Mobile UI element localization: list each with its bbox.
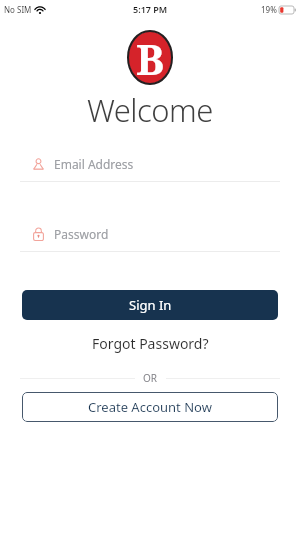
staticText: Create Account Now [88, 398, 212, 416]
staticText: No SIM [4, 4, 32, 15]
staticText: 5:17 PM [133, 3, 168, 15]
button[interactable]: Create Account Now [22, 392, 278, 422]
button[interactable]: Forgot Password? [92, 334, 209, 353]
staticText: Password [54, 226, 109, 242]
button[interactable]: Sign In [22, 290, 278, 320]
staticText: Welcome [87, 89, 213, 129]
button[interactable]: Password [33, 226, 300, 242]
staticText: Sign In [129, 296, 172, 314]
staticText: 19% [261, 4, 277, 15]
staticText: Email Address [54, 156, 134, 172]
staticText: Forgot Password? [92, 334, 209, 353]
button[interactable]: Email Address [33, 156, 300, 172]
staticText: OR [143, 371, 158, 385]
staticText: B [136, 30, 165, 85]
